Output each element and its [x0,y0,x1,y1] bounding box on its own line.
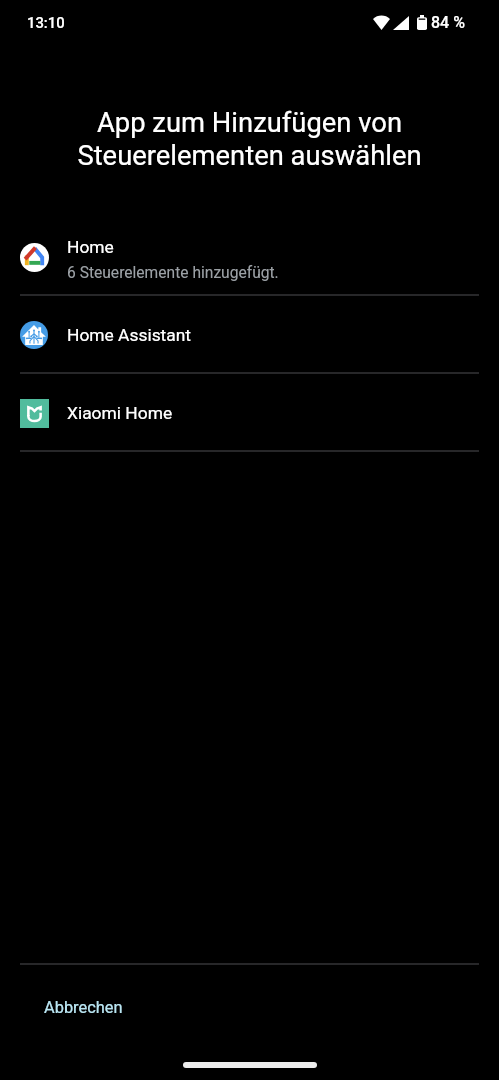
button[interactable]: Abbrechen [32,991,135,1024]
staticText: App zum Hinzufügen von Steuerelementen a… [20,107,479,171]
button[interactable]: Home [0,218,499,296]
staticText: Abbrechen [44,998,123,1017]
staticText: 13:10 [27,14,65,31]
staticText: Home Assistant [67,325,192,345]
button[interactable]: Home Assistant [0,296,499,374]
staticText: Home [67,237,114,257]
staticText: 84 % [431,13,465,32]
button[interactable]: Xiaomi Home [0,374,499,452]
staticText: 6 Steuerelemente hinzugefügt. [67,264,279,282]
staticText: Xiaomi Home [67,403,173,423]
